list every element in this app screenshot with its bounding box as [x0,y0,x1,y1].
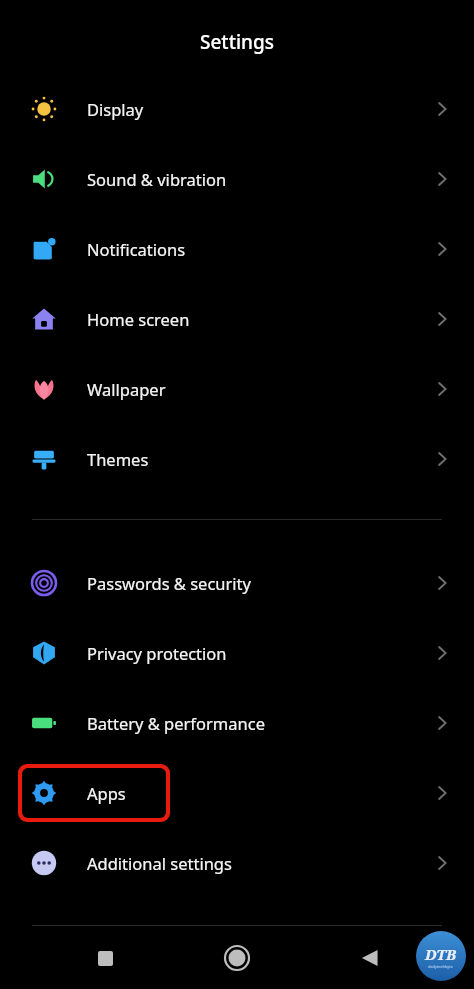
staticText: Themes [87,448,149,470]
button[interactable]: Back [342,930,398,986]
button[interactable]: Battery & performance [0,688,474,758]
staticText: Settings [200,29,274,55]
button[interactable]: Additional settings [0,828,474,898]
button[interactable]: Home screen [0,284,474,354]
button[interactable]: Themes [0,424,474,494]
staticText: dailytechbyte [428,964,454,969]
button[interactable]: Passwords & security [0,548,474,618]
staticText: DTB [425,944,457,964]
staticText: Additional settings [87,852,232,874]
button[interactable]: Notifications [0,214,474,284]
staticText: Notifications [87,238,186,260]
staticText: Battery & performance [87,712,265,734]
staticText: Wallpaper [87,378,166,400]
button[interactable]: Privacy protection [0,618,474,688]
button[interactable]: Display [0,74,474,144]
staticText: Home screen [87,308,190,330]
button[interactable]: Recent apps [77,930,133,986]
button[interactable]: Apps [0,758,474,828]
staticText: Display [87,98,144,120]
staticText: Apps [87,782,126,804]
button[interactable]: Sound & vibration [0,144,474,214]
button[interactable]: Wallpaper [0,354,474,424]
staticText: Sound & vibration [87,168,227,190]
button[interactable]: Home [209,930,265,986]
staticText: Passwords & security [87,572,251,594]
staticText: Privacy protection [87,642,227,664]
